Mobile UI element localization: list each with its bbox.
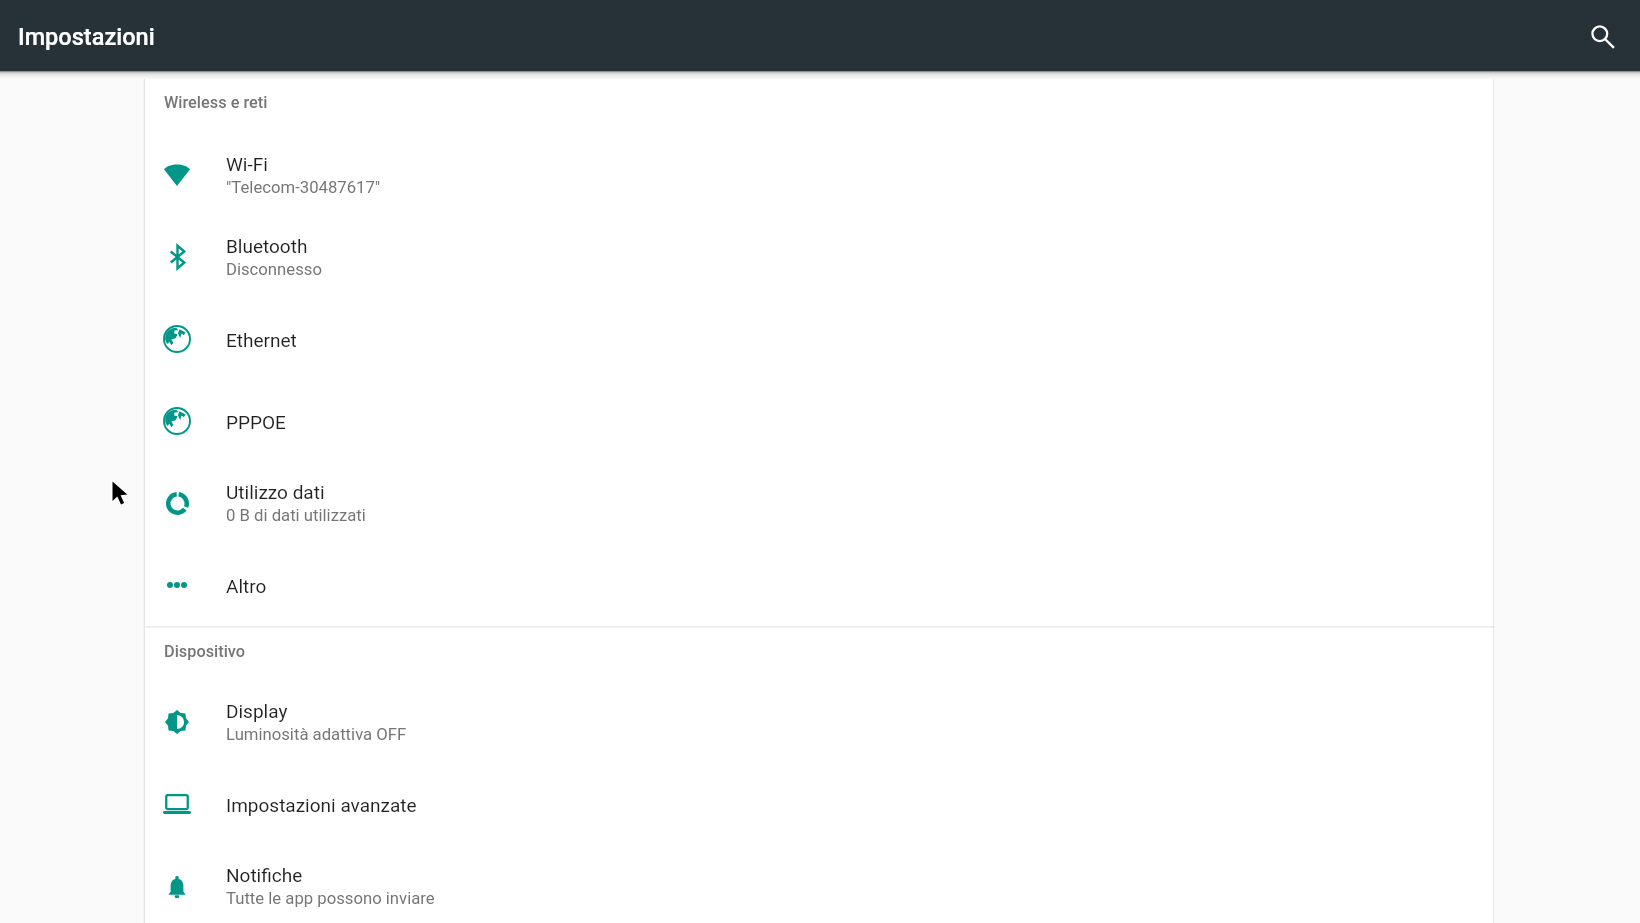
button[interactable]: Notifiche <box>145 845 1495 923</box>
staticText: Impostazioni <box>18 23 155 51</box>
button[interactable]: Cerca <box>1577 11 1629 63</box>
staticText: Impostazioni avanzate <box>226 794 417 816</box>
button[interactable]: Bluetooth <box>145 216 1495 298</box>
button[interactable]: Impostazioni avanzate <box>145 763 1495 845</box>
staticText: Display <box>226 700 288 722</box>
staticText: "Telecom-30487617" <box>226 178 381 198</box>
button[interactable]: Ethernet <box>145 298 1495 380</box>
staticText: Wi-Fi <box>226 153 268 175</box>
staticText: Altro <box>226 575 267 597</box>
staticText: Dispositivo <box>164 642 246 661</box>
staticText: PPPOE <box>226 411 286 433</box>
button[interactable]: PPPOE <box>145 380 1495 462</box>
staticText: Disconnesso <box>226 260 322 280</box>
staticText: Luminosità adattiva OFF <box>226 725 407 745</box>
staticText: 0 B di dati utilizzati <box>226 506 366 526</box>
button[interactable]: Wi-Fi <box>145 134 1495 216</box>
staticText: Notifiche <box>226 864 303 886</box>
staticText: Utilizzo dati <box>226 481 325 503</box>
button[interactable]: Utilizzo dati <box>145 462 1495 544</box>
staticText: Tutte le app possono inviare <box>226 889 435 909</box>
button[interactable]: Display <box>145 681 1495 763</box>
button[interactable]: Altro <box>145 544 1495 626</box>
staticText: Bluetooth <box>226 235 308 257</box>
staticText: Wireless e reti <box>164 93 268 112</box>
staticText: Ethernet <box>226 329 297 351</box>
